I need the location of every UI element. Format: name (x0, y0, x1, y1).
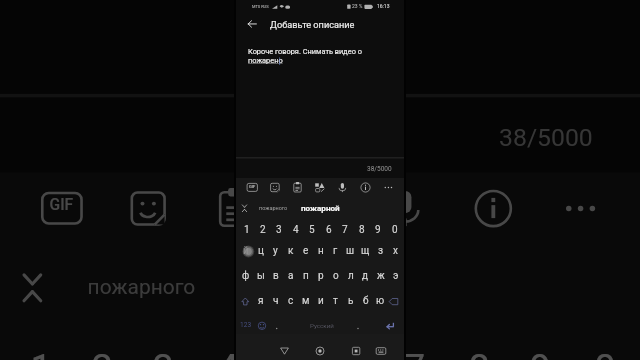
button[interactable]: Clipboard (288, 178, 306, 198)
button[interactable]: э (388, 269, 403, 283)
staticText: 9 (375, 224, 381, 236)
staticText: я (258, 295, 264, 307)
staticText: н (318, 245, 324, 257)
staticText: 2 (91, 348, 114, 360)
staticText: 7 (342, 224, 348, 236)
button[interactable]: Home (311, 334, 329, 360)
staticText: 16:13 (377, 3, 390, 9)
button[interactable]: Enter (382, 317, 404, 334)
staticText: Короче говоря. Снимать видео о (248, 47, 362, 56)
button[interactable]: л (343, 269, 358, 283)
staticText: а (288, 270, 294, 282)
staticText: 4 (217, 348, 240, 360)
button[interactable]: More (378, 178, 396, 198)
button[interactable]: щ (358, 244, 373, 258)
button[interactable]: у (268, 244, 283, 258)
button[interactable]: Expand suggestions (236, 198, 254, 216)
button[interactable]: Emoji (255, 317, 270, 334)
staticText: о (333, 270, 339, 282)
button[interactable]: GIF (242, 178, 260, 198)
button[interactable]: 6 (321, 223, 337, 237)
button[interactable] (255, 198, 291, 216)
staticText: с (288, 295, 294, 307)
button[interactable]: Recent apps (347, 334, 365, 360)
staticText: э (393, 270, 399, 282)
button[interactable]: г (328, 244, 343, 258)
button[interactable]: а (283, 269, 298, 283)
button[interactable] (294, 198, 346, 216)
button[interactable]: в (268, 269, 283, 283)
button[interactable]: ц (253, 244, 268, 258)
staticText: г (333, 245, 338, 257)
button[interactable]: 0 (387, 223, 403, 237)
button[interactable]: 2 (255, 223, 271, 237)
button[interactable]: с (283, 294, 298, 308)
staticText: GIF (49, 195, 76, 214)
button[interactable]: ф (238, 269, 253, 283)
button[interactable]: ю (373, 294, 388, 308)
staticText: п (303, 270, 309, 282)
button[interactable]: 7 (337, 223, 353, 237)
staticText: 9 (529, 348, 552, 360)
button[interactable]: х (388, 244, 403, 258)
button[interactable]: м (298, 294, 313, 308)
staticText: 1 (244, 224, 250, 236)
button[interactable]: Info (357, 178, 375, 198)
staticText: 0 (392, 224, 398, 236)
button[interactable]: Voice input (333, 178, 351, 198)
staticText: пожарной (248, 268, 396, 302)
button[interactable]: ш (343, 244, 358, 258)
staticText: 3 (276, 224, 282, 236)
staticText: ы (257, 270, 265, 282)
button[interactable]: е (298, 244, 313, 258)
button[interactable]: Translate (311, 178, 329, 198)
button[interactable]: ы (253, 269, 268, 283)
button[interactable]: б (358, 294, 373, 308)
button[interactable]: т (328, 294, 343, 308)
button[interactable]: Shift (237, 292, 253, 311)
button[interactable]: 3 (271, 223, 287, 237)
button[interactable]: н (313, 244, 328, 258)
staticText: 38/5000 (499, 123, 594, 153)
button[interactable]: Hide keyboard (372, 334, 390, 360)
staticText: 0 (594, 348, 617, 360)
staticText: 23 % (352, 3, 363, 9)
button[interactable]: и (313, 294, 328, 308)
button[interactable]: з (373, 244, 388, 258)
button[interactable]: ь (343, 294, 358, 308)
staticText: 3 (152, 348, 175, 360)
button[interactable]: 9 (370, 223, 386, 237)
button[interactable]: д (358, 269, 373, 283)
button[interactable]: ч (268, 294, 283, 308)
staticText: в (273, 270, 279, 282)
button[interactable]: Numbers (238, 317, 254, 334)
staticText: щ (361, 245, 370, 257)
staticText: и (318, 295, 324, 307)
button[interactable]: Back (276, 334, 293, 360)
staticText: Добавьте описание (270, 19, 355, 30)
button[interactable]: Description (236, 40, 404, 155)
button[interactable]: 8 (354, 223, 370, 237)
staticText: р (318, 270, 324, 282)
staticText: MTS RUS (252, 4, 269, 9)
button[interactable]: Stickers (265, 178, 283, 198)
button[interactable]: ж (373, 269, 388, 283)
staticText: у (273, 245, 278, 257)
button[interactable]: я (253, 294, 268, 308)
staticText: ю (376, 295, 385, 307)
button[interactable]: 1 (239, 223, 255, 237)
button[interactable]: 4 (288, 223, 304, 237)
button[interactable] (284, 317, 352, 334)
button[interactable]: 5 (304, 223, 320, 237)
staticText: ж (377, 270, 385, 282)
button[interactable]: к (283, 244, 298, 258)
button[interactable]: й (238, 244, 253, 258)
button[interactable]: Back (244, 16, 260, 32)
button[interactable]: п (298, 269, 313, 283)
staticText: 8 (469, 348, 491, 360)
button[interactable]: о (328, 269, 343, 283)
staticText: й (243, 245, 249, 257)
staticText: ь (348, 295, 354, 307)
button[interactable]: р (313, 269, 328, 283)
button[interactable]: Backspace (386, 292, 403, 311)
